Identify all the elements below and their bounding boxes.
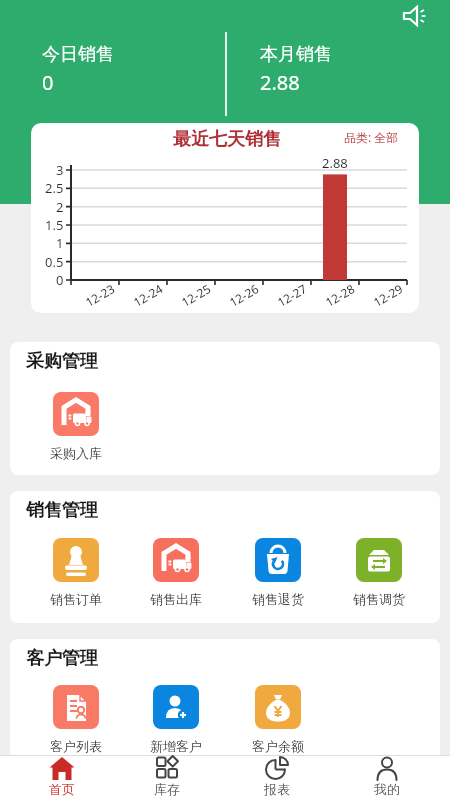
staticText: 首页 [49, 781, 75, 797]
staticText: 本月销售 [260, 43, 332, 66]
staticText: 新增客户 [150, 738, 202, 754]
button[interactable]: 我的 [332, 755, 442, 800]
staticText: 我的 [374, 781, 400, 797]
button[interactable]: 库存 [112, 755, 222, 800]
button[interactable]: 采购入库 [30, 392, 122, 461]
staticText: 库存 [154, 781, 180, 797]
staticText: 3 [56, 161, 64, 179]
staticText: 客户余额 [252, 738, 304, 754]
staticText: 客户管理 [26, 647, 98, 670]
staticText: 销售出库 [150, 591, 202, 607]
staticText: 12-25 [178, 280, 214, 310]
button[interactable]: 新增客户 [130, 685, 222, 754]
staticText: 销售管理 [26, 499, 98, 522]
staticText: 12-26 [226, 280, 262, 310]
button[interactable] [401, 3, 429, 29]
button[interactable]: 销售出库 [130, 538, 222, 607]
button[interactable]: 销售退货 [232, 538, 324, 607]
staticText: 2.5 [45, 179, 64, 197]
staticText: 采购管理 [26, 350, 98, 373]
staticText: 2 [56, 198, 64, 216]
staticText: 0.5 [45, 253, 64, 271]
staticText: 客户列表 [50, 738, 102, 754]
button[interactable]: 销售订单 [30, 538, 122, 607]
staticText: 销售调货 [353, 591, 405, 607]
staticText: 销售退货 [252, 591, 304, 607]
button[interactable]: 客户列表 [30, 685, 122, 754]
button[interactable]: 销售调货 [333, 538, 425, 607]
button[interactable]: 品类: 全部 [344, 129, 399, 145]
button[interactable]: 报表 [222, 755, 332, 800]
staticText: 12-24 [130, 280, 166, 310]
staticText: 销售订单 [50, 591, 102, 607]
staticText: 1 [56, 234, 64, 252]
staticText: 报表 [264, 781, 290, 797]
staticText: 0 [42, 69, 54, 96]
staticText: 12-27 [274, 280, 310, 310]
button[interactable]: 客户余额 [232, 685, 324, 754]
staticText: 12-23 [82, 280, 118, 310]
staticText: 12-29 [370, 280, 406, 310]
staticText: 12-28 [322, 280, 358, 310]
staticText: 今日销售 [42, 43, 114, 66]
staticText: 2.88 [260, 69, 300, 96]
staticText: 采购入库 [50, 445, 102, 461]
staticText: 0 [56, 271, 64, 289]
button[interactable]: 首页 [7, 755, 117, 800]
staticText: 2.88 [322, 154, 348, 172]
staticText: 最近七天销售 [173, 128, 281, 151]
staticText: 1.5 [45, 216, 64, 234]
